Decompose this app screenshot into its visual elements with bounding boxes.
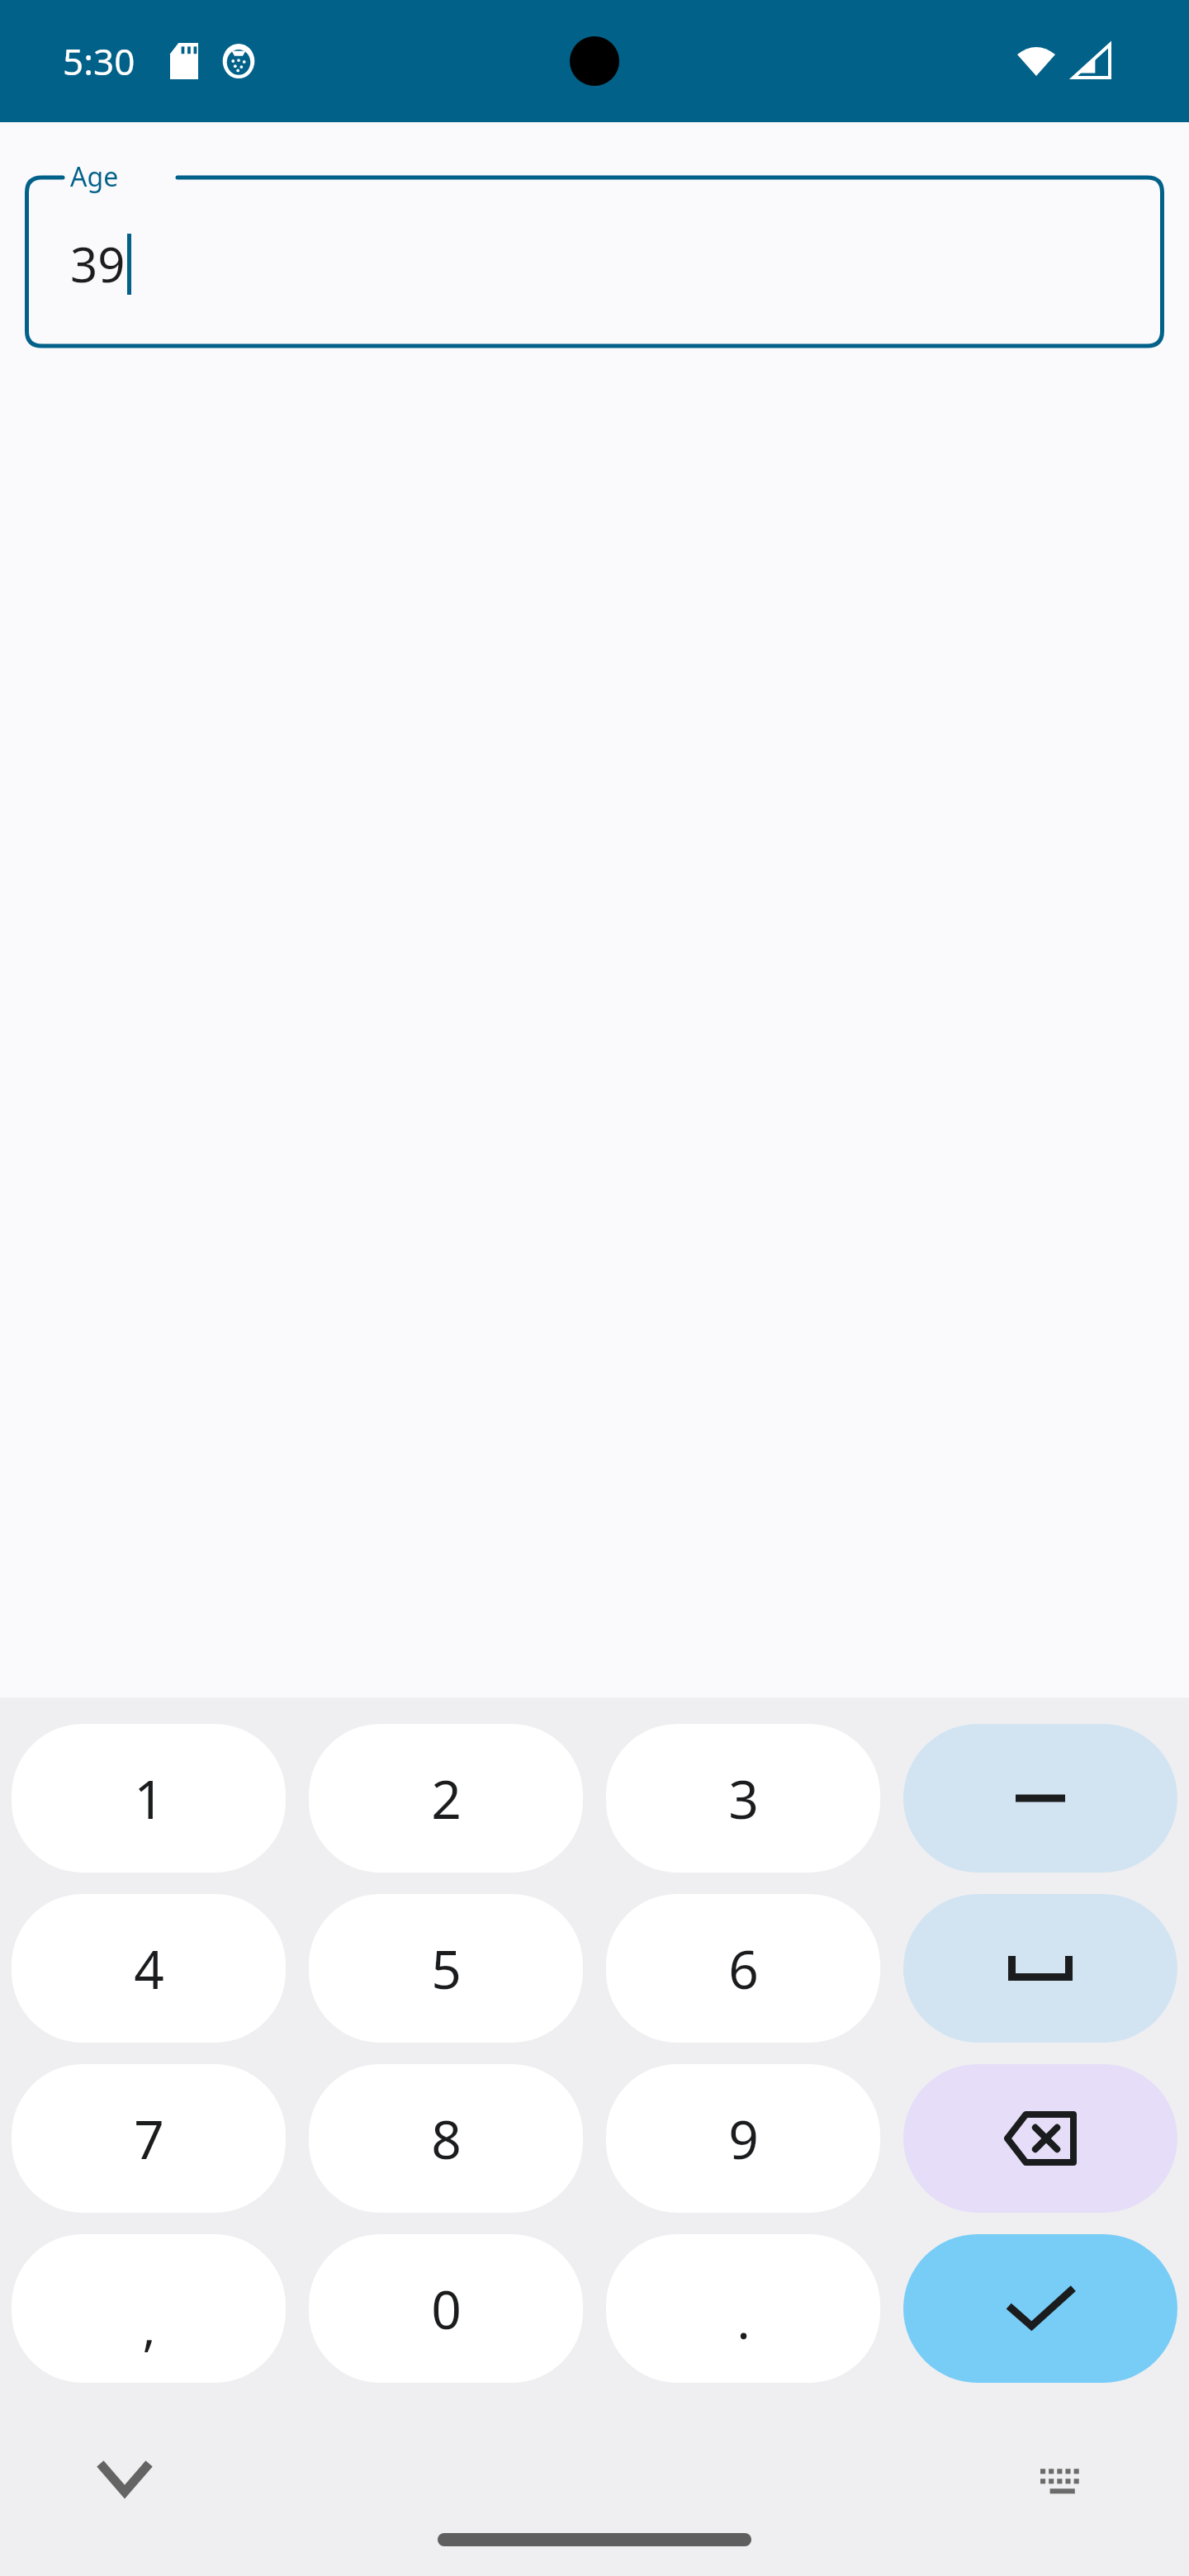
staticText: , [142, 2293, 156, 2361]
button[interactable]: 0 [309, 2234, 583, 2383]
staticText: Age [70, 159, 119, 195]
button[interactable]: Minus [903, 1724, 1177, 1873]
button[interactable]: Space [903, 1894, 1177, 2043]
button[interactable]: 2 [309, 1724, 583, 1873]
button[interactable]: 8 [309, 2064, 583, 2213]
staticText: 3 [728, 1763, 759, 1835]
staticText: 5 [431, 1933, 462, 2005]
button[interactable]: , [12, 2234, 286, 2383]
button[interactable]: 6 [606, 1894, 880, 2043]
button[interactable]: 1 [12, 1724, 286, 1873]
button[interactable]: . [606, 2234, 880, 2383]
staticText: 4 [134, 1933, 164, 2005]
staticText: 6 [728, 1933, 759, 2005]
button[interactable]: Hide keyboard [79, 2434, 170, 2525]
button[interactable]: 3 [606, 1724, 880, 1873]
staticText: 5:30 [63, 36, 135, 86]
button[interactable]: Done [903, 2234, 1177, 2383]
button[interactable]: 9 [606, 2064, 880, 2213]
button[interactable]: 4 [12, 1894, 286, 2043]
staticText: 0 [431, 2273, 462, 2345]
button[interactable]: 5 [309, 1894, 583, 2043]
staticText: 8 [431, 2103, 462, 2175]
staticText: 39 [70, 231, 126, 296]
staticText: 1 [134, 1763, 164, 1835]
button[interactable]: Age [25, 165, 1164, 357]
button[interactable]: Change keyboard [1019, 2434, 1110, 2525]
staticText: . [737, 2286, 751, 2354]
button[interactable]: Backspace [903, 2064, 1177, 2213]
staticText: 7 [134, 2103, 164, 2175]
button[interactable]: 7 [12, 2064, 286, 2213]
staticText: 2 [431, 1763, 462, 1835]
staticText: 9 [728, 2103, 759, 2175]
